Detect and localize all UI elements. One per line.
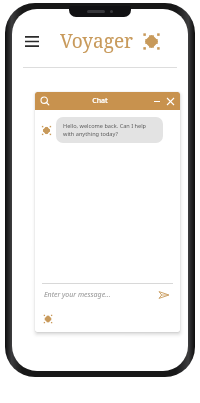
button[interactable]: Enter your message... — [44, 290, 157, 300]
staticText: Enter your message... — [44, 290, 111, 300]
staticText: Chat — [92, 96, 108, 106]
staticText: Hello, welcome back. Can I help with any… — [63, 122, 156, 138]
staticText: Voyager — [60, 28, 134, 54]
button[interactable]: Send — [157, 288, 171, 302]
button[interactable]: Chat — [35, 92, 180, 110]
button[interactable]: Menu — [21, 30, 43, 52]
button[interactable]: Close — [163, 94, 177, 108]
button[interactable]: Minimize — [151, 95, 163, 107]
